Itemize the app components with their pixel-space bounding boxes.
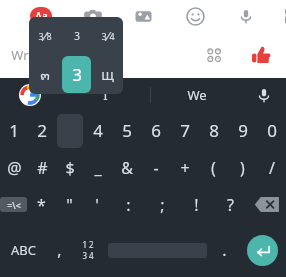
staticText: ' [95,194,99,216]
button[interactable]: _ [84,149,112,186]
staticText: 0 [267,119,277,142]
button[interactable]: Like [248,42,274,68]
button[interactable]: # [28,149,56,186]
staticText: 8 [46,30,52,42]
staticText: ๓ [40,64,50,86]
staticText: ; [160,194,165,216]
button[interactable]: 8 [199,112,228,149]
button[interactable]: 5 [112,112,141,149]
button[interactable]: Gallery [131,4,155,28]
button[interactable] [56,112,84,149]
staticText: 3 [72,63,82,86]
staticText: @ [7,157,22,179]
button[interactable]: 0 [257,112,286,149]
staticText: _ [94,157,102,179]
staticText: 3 [38,30,44,42]
button[interactable]: - [141,149,170,186]
button[interactable]: . [211,223,238,277]
button[interactable]: Voice input [242,78,286,112]
staticText: Aa [35,9,48,23]
button[interactable]: 4 [84,112,112,149]
staticText: & [121,157,133,179]
staticText: 1 2 [82,239,94,250]
button[interactable]: 1 [0,112,28,149]
button[interactable]: " [55,186,83,223]
button[interactable]: Text style [30,7,52,25]
button[interactable]: 2 [28,112,56,149]
button[interactable]: ) [228,149,257,186]
button[interactable]: Stickers [202,43,226,67]
staticText: ! [194,194,199,216]
staticText: 8 [209,119,219,142]
button[interactable]: =\< [0,186,27,223]
button[interactable]: & [112,149,141,186]
staticText: We [187,86,207,104]
staticText: 4 [109,30,115,42]
button[interactable]: GIF [285,4,286,28]
staticText: # [37,157,48,179]
button[interactable]: 6 [141,112,170,149]
button[interactable]: Numbers [73,223,103,277]
button[interactable]: * [27,186,55,223]
button[interactable]: / [257,149,286,186]
button[interactable]: @ [0,149,28,186]
button[interactable]: + [170,149,199,186]
staticText: =\< [7,199,21,211]
staticText: / [269,157,275,179]
staticText: * [37,194,46,216]
staticText: 6 [151,119,161,142]
staticText: ( [211,157,216,179]
staticText: + [180,157,190,179]
button[interactable]: : [111,186,145,223]
button[interactable]: ? [213,186,247,223]
button[interactable]: ABC [0,223,46,277]
staticText: 3 4 [82,250,94,261]
button[interactable]: 7 [170,112,199,149]
staticText: 9 [238,119,248,142]
staticText: 3 [74,29,80,43]
button[interactable]: Space [103,223,211,277]
button[interactable]: ; [145,186,179,223]
staticText: I [103,86,108,104]
button[interactable]: Google [0,78,60,112]
staticText: , [57,239,62,261]
button[interactable]: ๓ [29,55,61,94]
button[interactable]: щ [92,55,123,94]
staticText: ⁄ [107,27,109,45]
staticText: 5 [122,119,132,142]
button[interactable]: ( [199,149,228,186]
staticText: щ [101,65,114,84]
button[interactable]: We [151,78,242,112]
staticText: 7 [180,119,190,142]
button[interactable]: 3 [29,17,61,55]
staticText: 4 [93,119,103,142]
button[interactable]: Enter [238,223,286,277]
button[interactable]: , [46,223,73,277]
staticText: 3 [101,30,107,42]
button[interactable]: ' [83,186,111,223]
button[interactable]: 3 [62,56,91,93]
staticText: - [153,157,159,179]
button[interactable]: Emoji [183,4,207,28]
button[interactable]: I [60,78,150,112]
button[interactable]: $ [56,149,84,186]
staticText: " [66,194,73,216]
button[interactable]: 9 [228,112,257,149]
staticText: ABC [11,241,36,259]
staticText: . [222,239,227,261]
button[interactable]: 3 [61,17,92,55]
staticText: ? [227,194,234,216]
button[interactable]: Camera [81,4,105,28]
staticText: : [126,194,131,216]
staticText: Wr [11,46,29,64]
staticText: $ [65,157,75,179]
staticText: GIF [285,9,286,24]
button[interactable]: ! [179,186,213,223]
button[interactable]: 3 [92,17,123,55]
button[interactable]: Backspace [247,186,286,223]
staticText: ⁄ [44,27,46,45]
button[interactable]: Voice [234,4,258,28]
staticText: 1 [9,119,19,142]
staticText: 2 [37,119,47,142]
staticText: ) [240,157,245,179]
